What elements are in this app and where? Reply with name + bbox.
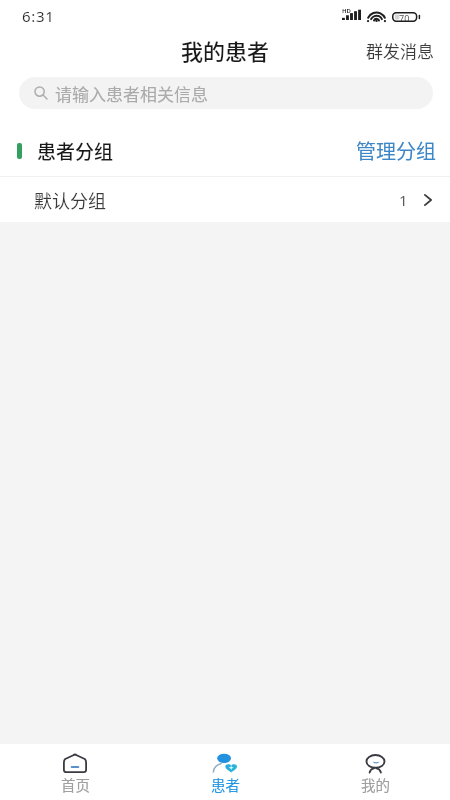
staticText: 我的患者: [181, 34, 270, 66]
staticText: 群发消息: [366, 38, 434, 62]
staticText: 患者分组: [37, 137, 114, 165]
other: 我的: [363, 753, 387, 773]
staticText: 管理分组: [356, 136, 436, 165]
button[interactable]: 默认分组: [0, 177, 450, 222]
staticText: 首页: [61, 774, 90, 795]
other: 首页: [63, 753, 87, 773]
other: 患者: [213, 753, 237, 773]
button[interactable]: 首页: [0, 744, 150, 800]
button[interactable]: 群发消息: [350, 30, 450, 70]
staticText: 患者: [211, 774, 240, 795]
button[interactable]: 请输入患者相关信息: [19, 77, 433, 109]
staticText: 6:31: [22, 6, 55, 26]
staticText: 1: [399, 190, 408, 210]
staticText: 默认分组: [34, 187, 106, 213]
button[interactable]: 患者: [150, 744, 300, 800]
button[interactable]: 管理分组: [340, 128, 450, 173]
button[interactable]: 我的: [300, 744, 450, 800]
staticText: 70: [399, 12, 410, 22]
staticText: 我的: [361, 774, 390, 795]
staticText: 请输入患者相关信息: [55, 81, 208, 106]
staticText: HD: [342, 7, 351, 15]
